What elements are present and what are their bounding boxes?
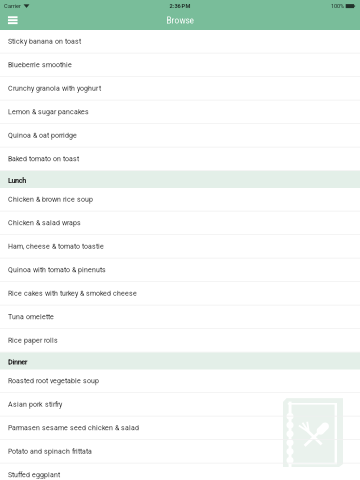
button[interactable]: Rice paper rolls xyxy=(0,329,360,352)
button[interactable]: Baked tomato on toast xyxy=(0,147,360,171)
button[interactable]: Quinoa with tomato & pinenuts xyxy=(0,258,360,282)
staticText: Browse xyxy=(166,16,193,25)
staticText: Parmasen sesame seed chicken & salad xyxy=(8,424,139,432)
staticText: Roasted root vegetable soup xyxy=(8,377,99,385)
button[interactable]: Lemon & sugar pancakes xyxy=(0,100,360,124)
staticText: Baked tomato on toast xyxy=(8,155,79,163)
staticText: Blueberrie smoothie xyxy=(8,61,72,69)
staticText: Rice cakes with turkey & smoked cheese xyxy=(8,289,137,297)
button[interactable]: Menu xyxy=(0,10,25,30)
staticText: Asian pork stirfry xyxy=(8,400,62,408)
button[interactable]: Parmasen sesame seed chicken & salad xyxy=(0,416,360,440)
staticText: Chicken & salad wraps xyxy=(8,219,81,227)
button[interactable]: Roasted root vegetable soup xyxy=(0,369,360,393)
staticText: Dinner xyxy=(8,358,28,366)
staticText: Quinoa & oat porridge xyxy=(8,131,77,139)
button[interactable]: Quinoa & oat porridge xyxy=(0,124,360,147)
button[interactable]: Sticky banana on toast xyxy=(0,30,360,53)
staticText: Crunchy granola with yoghurt xyxy=(8,84,101,92)
staticText: Stuffed eggplant xyxy=(8,471,60,479)
staticText: Lemon & sugar pancakes xyxy=(8,108,89,116)
staticText: Lunch xyxy=(8,176,26,185)
button[interactable]: Asian pork stirfry xyxy=(0,393,360,416)
staticText: Sticky banana on toast xyxy=(8,37,81,45)
staticText: Quinoa with tomato & pinenuts xyxy=(8,266,106,274)
button[interactable]: Tuna omelette xyxy=(0,305,360,329)
staticText: 2:36 PM xyxy=(169,3,190,9)
staticText: Ham, cheese & tomato toastie xyxy=(8,242,104,250)
staticText: Tuna omelette xyxy=(8,313,54,321)
button[interactable]: Potato and spinach frittata xyxy=(0,440,360,463)
staticText: 100% xyxy=(331,3,344,9)
button[interactable]: Ham, cheese & tomato toastie xyxy=(0,235,360,258)
button[interactable]: Crunchy granola with yoghurt xyxy=(0,77,360,100)
button[interactable]: Rice cakes with turkey & smoked cheese xyxy=(0,282,360,305)
staticText: Potato and spinach frittata xyxy=(8,447,92,455)
button[interactable]: Stuffed eggplant xyxy=(0,463,360,480)
staticText: Rice paper rolls xyxy=(8,336,58,344)
staticText: Carrier xyxy=(4,3,21,9)
button[interactable]: Blueberrie smoothie xyxy=(0,53,360,77)
button[interactable]: Chicken & salad wraps xyxy=(0,211,360,235)
button[interactable]: Chicken & brown rice soup xyxy=(0,188,360,211)
staticText: Chicken & brown rice soup xyxy=(8,195,93,203)
